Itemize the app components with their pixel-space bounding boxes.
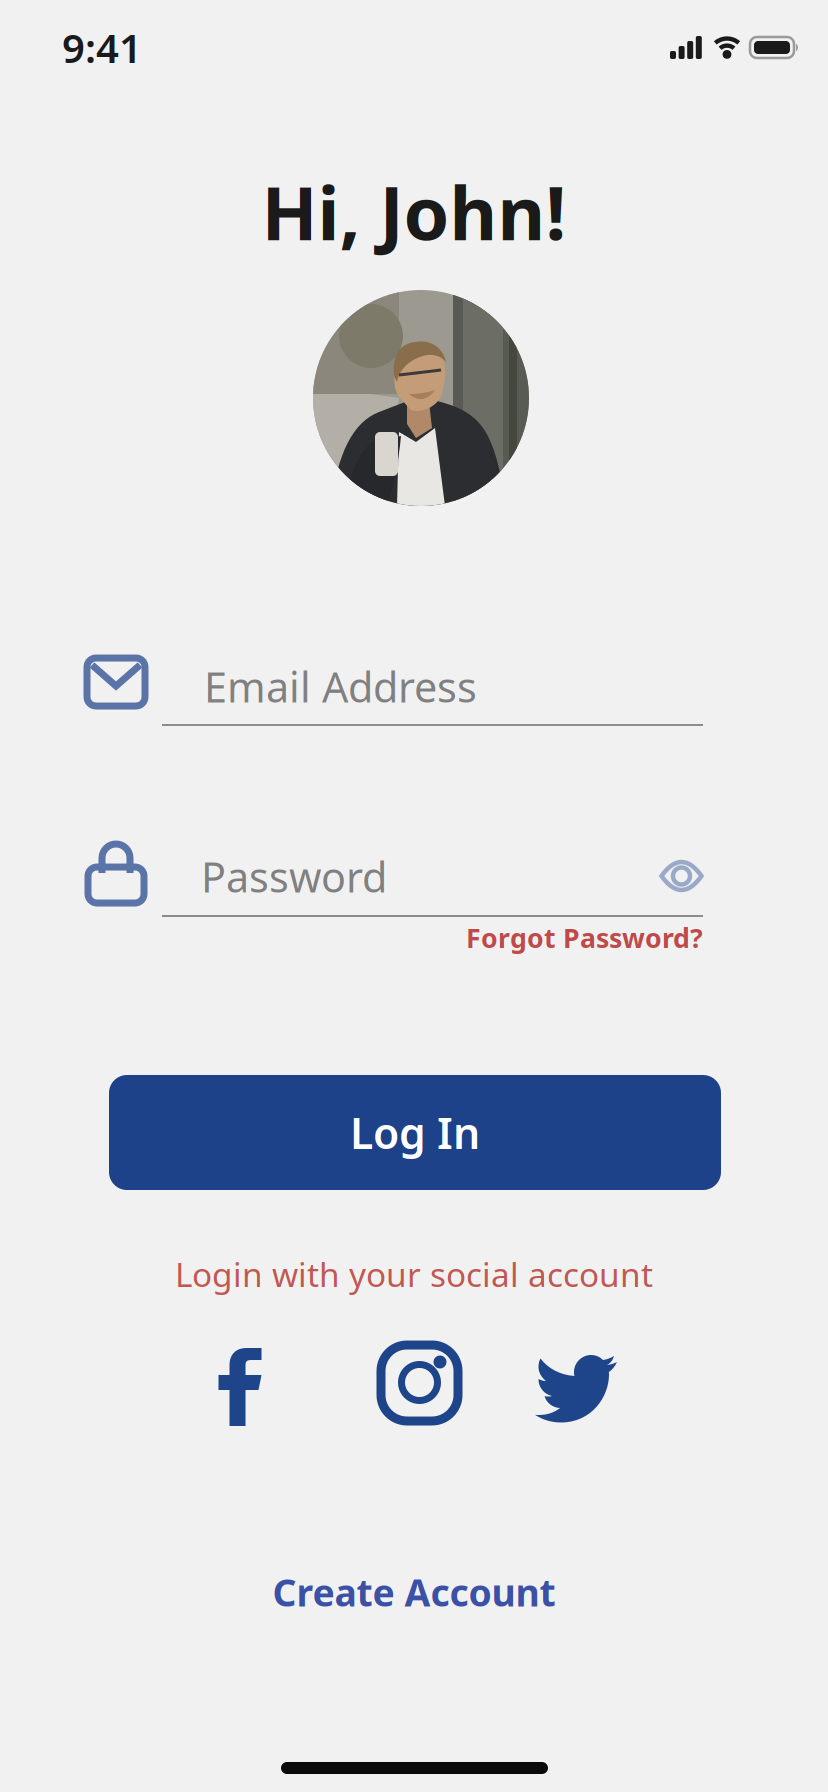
staticText: Log In <box>350 1104 480 1161</box>
button[interactable] <box>372 1336 458 1421</box>
button[interactable]: Email Address <box>82 650 707 728</box>
button[interactable] <box>535 1350 617 1420</box>
button[interactable]: Create Account <box>164 1562 664 1622</box>
button[interactable]: Forgot Password? <box>466 920 703 955</box>
staticText: Login with your social account <box>175 1252 653 1296</box>
button[interactable] <box>210 1345 270 1429</box>
staticText: Email Address <box>204 659 477 714</box>
staticText: Hi, John! <box>261 163 566 260</box>
button[interactable]: Log In <box>109 1075 721 1190</box>
staticText: 9:41 <box>62 21 142 74</box>
button[interactable]: Password <box>82 841 707 919</box>
staticText: Password <box>201 849 387 904</box>
button[interactable] <box>651 851 712 901</box>
staticText: Create Account <box>272 1567 555 1617</box>
staticText: Forgot Password? <box>466 920 703 955</box>
